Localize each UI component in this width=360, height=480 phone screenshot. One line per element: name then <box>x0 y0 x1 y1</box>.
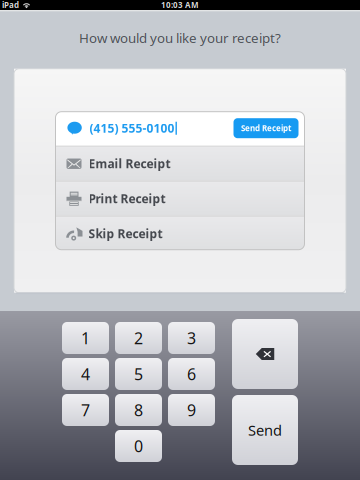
button[interactable]: Skip Receipt <box>55 217 304 251</box>
button[interactable]: 7 <box>62 394 109 426</box>
staticText: 0 <box>134 435 143 457</box>
staticText: 3 <box>187 327 196 349</box>
button[interactable]: 2 <box>115 322 162 354</box>
staticText: 8 <box>134 399 143 421</box>
staticText: 10:03 AM <box>161 0 199 10</box>
button[interactable]: Print Receipt <box>55 182 304 216</box>
button[interactable]: 6 <box>168 358 215 390</box>
button[interactable]: (415) 555-0100 <box>55 111 304 146</box>
button[interactable]: 3 <box>168 322 215 354</box>
staticText: 4 <box>81 363 90 385</box>
staticText: 5 <box>134 363 143 385</box>
button[interactable]: Email Receipt <box>55 147 304 181</box>
staticText: Skip Receipt <box>88 226 162 242</box>
staticText: 6 <box>187 363 196 385</box>
button[interactable]: 8 <box>115 394 162 426</box>
button[interactable]: Send <box>232 395 298 465</box>
staticText: iPad <box>2 0 19 10</box>
staticText: Print Receipt <box>88 191 165 207</box>
staticText: 1 <box>81 327 90 349</box>
staticText: Send <box>248 420 282 440</box>
button[interactable]: 1 <box>62 322 109 354</box>
staticText: How would you like your receipt? <box>79 29 281 47</box>
staticText: Send Receipt <box>241 123 291 133</box>
staticText: 9 <box>187 399 196 421</box>
staticText: (415) 555-0100 <box>89 120 174 136</box>
button[interactable]: 0 <box>115 430 162 462</box>
button[interactable]: Delete <box>232 319 298 389</box>
staticText: 2 <box>134 327 143 349</box>
button[interactable]: 5 <box>115 358 162 390</box>
staticText: 7 <box>81 399 90 421</box>
button[interactable]: 4 <box>62 358 109 390</box>
button[interactable]: 9 <box>168 394 215 426</box>
staticText: Email Receipt <box>88 156 170 172</box>
